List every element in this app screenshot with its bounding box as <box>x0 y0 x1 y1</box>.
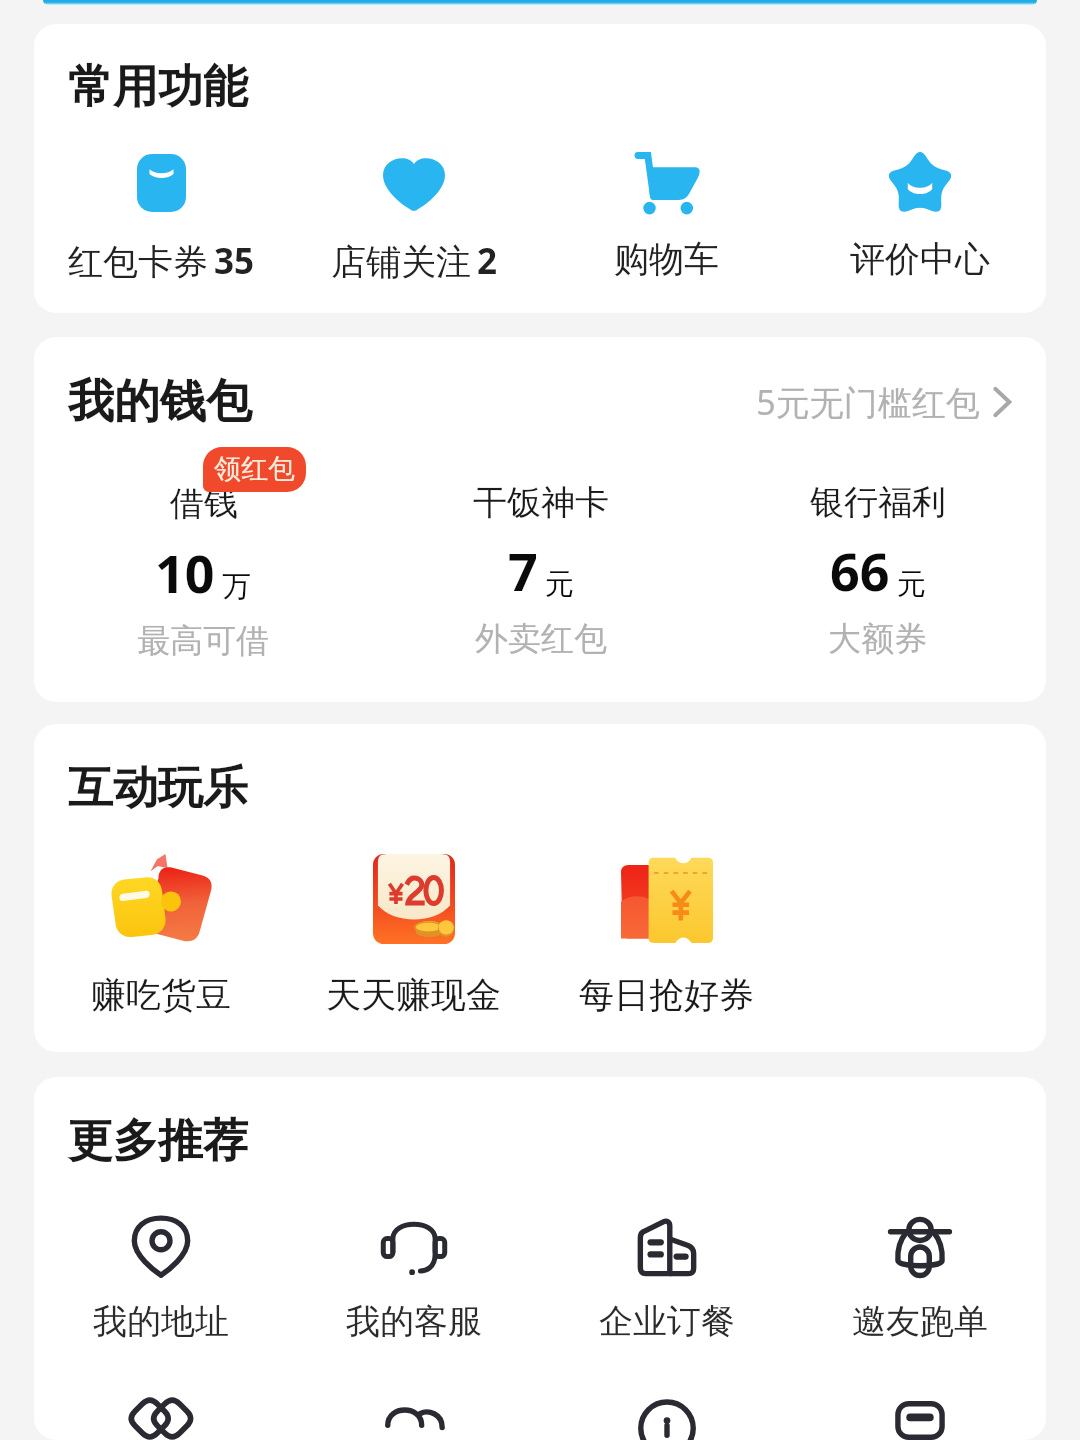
button[interactable]: 借钱 <box>34 481 372 662</box>
button[interactable]: 好友 <box>287 1401 540 1440</box>
other: 好友 <box>382 1401 446 1440</box>
staticText: 7 <box>508 535 538 606</box>
staticText: 红包卡券 35 <box>68 237 254 285</box>
staticText: 10 <box>155 537 215 608</box>
button[interactable]: 每日抢好券 <box>540 851 793 1017</box>
other: 我的客服 <box>382 1217 446 1277</box>
button[interactable]: 我的客服 <box>287 1215 540 1343</box>
staticText: 5元无门槛红包 <box>756 379 980 425</box>
other: 赚吃货豆 <box>111 851 211 947</box>
staticText: 店铺关注 2 <box>331 237 497 285</box>
staticText: 银行福利 <box>810 481 946 524</box>
staticText: 我的地址 <box>93 1300 229 1343</box>
button[interactable]: 我的地址 <box>34 1215 287 1343</box>
staticText: 我的钱包 <box>68 373 252 431</box>
staticText: 我的客服 <box>346 1300 482 1343</box>
button[interactable]: 银行福利 <box>709 481 1046 660</box>
button[interactable]: 评价中心 <box>793 152 1046 281</box>
staticText: 万 <box>222 568 251 605</box>
staticText: 每日抢好券 <box>579 973 754 1017</box>
other: 帮助 <box>635 1401 699 1440</box>
button[interactable]: 店铺关注 <box>287 152 540 285</box>
staticText: 最高可借 <box>137 620 269 662</box>
button[interactable]: 企业订餐 <box>540 1215 793 1343</box>
other: 评价中心 <box>887 152 953 214</box>
other: 邀友跑单 <box>888 1216 952 1278</box>
other: 每日抢好券 <box>621 855 713 943</box>
button[interactable]: 干饭神卡 <box>372 481 709 660</box>
staticText: 企业订餐 <box>599 1300 735 1343</box>
staticText: 元 <box>897 566 926 603</box>
other: 店铺关注 <box>383 156 445 211</box>
button[interactable]: 购物车 <box>540 152 793 281</box>
other: 企业订餐 <box>636 1216 698 1278</box>
staticText: 借钱 <box>170 482 238 525</box>
other: 红包卡券 <box>137 154 186 212</box>
staticText: 互动玩乐 <box>68 760 248 817</box>
staticText: 赚吃货豆 <box>91 973 231 1017</box>
staticText: 66 <box>830 535 890 606</box>
button[interactable]: 5元无门槛红包 <box>756 379 1012 425</box>
button[interactable]: 邀友跑单 <box>793 1215 1046 1343</box>
button[interactable]: 公益爱心 <box>34 1401 287 1440</box>
other: 购物车 <box>634 152 700 214</box>
staticText: 天天赚现金 <box>326 973 501 1017</box>
staticText: 元 <box>545 566 574 603</box>
other: 我的地址 <box>132 1216 190 1278</box>
button[interactable]: 红包卡券 <box>34 152 287 285</box>
button[interactable]: 天天赚现金 <box>287 851 540 1017</box>
staticText: 大额券 <box>828 618 927 660</box>
other: 公益爱心 <box>129 1401 193 1440</box>
staticText: 领红包 <box>214 452 295 486</box>
staticText: 购物车 <box>614 237 719 281</box>
staticText: 外卖红包 <box>475 618 607 660</box>
other: 天天赚现金 <box>373 854 455 944</box>
button[interactable]: 卡包 <box>793 1401 1046 1440</box>
other: 卡包 <box>888 1401 952 1440</box>
staticText: 邀友跑单 <box>852 1300 988 1343</box>
button[interactable]: 赚吃货豆 <box>34 851 287 1017</box>
staticText: 干饭神卡 <box>473 481 609 524</box>
button[interactable]: 帮助 <box>540 1401 793 1440</box>
staticText: 评价中心 <box>850 237 990 281</box>
staticText: 更多推荐 <box>68 1113 248 1170</box>
staticText: 常用功能 <box>68 59 248 116</box>
